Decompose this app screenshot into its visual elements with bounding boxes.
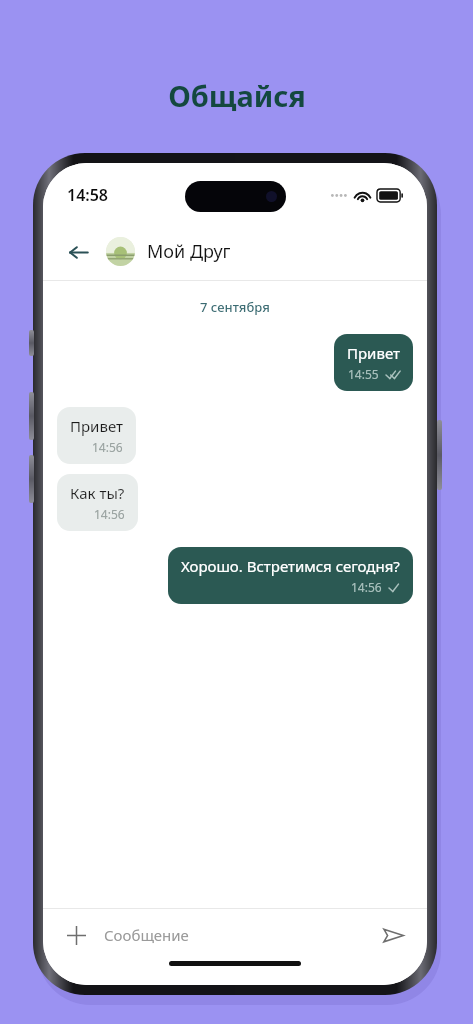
staticText: Мой Друг xyxy=(147,239,231,264)
staticText: Общайся xyxy=(168,76,306,115)
button[interactable]: Как ты? xyxy=(57,474,138,531)
staticText: 7 сентября xyxy=(200,298,270,316)
staticText: 14:56 xyxy=(92,439,123,455)
staticText: Хорошо. Встретимся сегодня? xyxy=(181,556,400,576)
button[interactable]: Send xyxy=(377,919,409,951)
button[interactable]: Contact avatar xyxy=(106,237,135,266)
staticText: Привет xyxy=(347,343,400,363)
staticText: Сообщение xyxy=(104,925,189,945)
button[interactable]: Хорошо. Встретимся сегодня? xyxy=(168,547,413,604)
button[interactable]: Привет xyxy=(334,334,413,391)
staticText: 14:55 xyxy=(348,366,379,382)
button[interactable]: Сообщение xyxy=(104,925,377,945)
staticText: Привет xyxy=(70,416,123,436)
button[interactable]: Привет xyxy=(57,407,136,464)
button[interactable]: Back xyxy=(61,235,95,269)
staticText: Как ты? xyxy=(70,483,125,503)
staticText: 14:56 xyxy=(351,579,382,595)
button[interactable]: Attach xyxy=(61,920,91,950)
staticText: 14:56 xyxy=(94,506,125,522)
staticText: 14:58 xyxy=(67,184,109,206)
